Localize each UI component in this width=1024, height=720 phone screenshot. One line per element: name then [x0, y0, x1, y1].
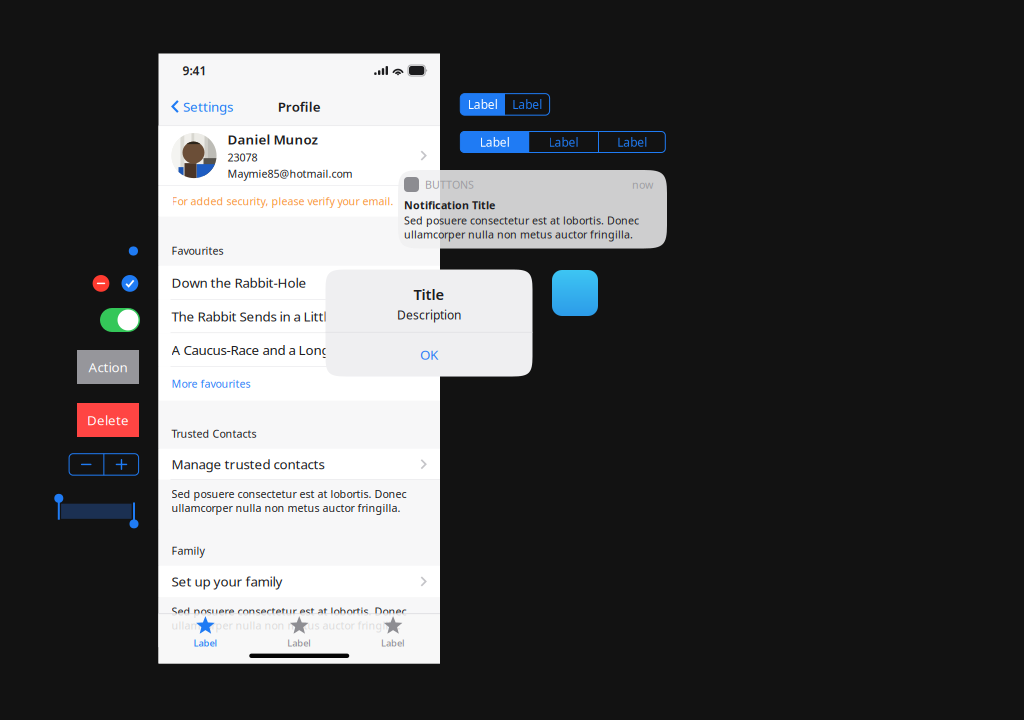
- staticText: Label: [512, 96, 542, 112]
- button[interactable]: Toggle on: [100, 308, 140, 332]
- staticText: Label: [287, 637, 311, 649]
- button[interactable]: Label: [460, 94, 505, 115]
- staticText: 23078: [227, 150, 257, 164]
- staticText: Label: [480, 134, 510, 150]
- staticText: Family: [171, 543, 204, 558]
- button[interactable]: Label: [599, 131, 665, 152]
- staticText: Description: [397, 307, 461, 323]
- button[interactable]: Label: [346, 614, 440, 650]
- staticText: Profile: [278, 98, 321, 115]
- staticText: Sed posuere consectetur est at lobortis.…: [171, 487, 406, 515]
- staticText: BUTTONS: [425, 177, 474, 192]
- button[interactable]: Label: [505, 94, 550, 115]
- staticText: Label: [549, 134, 579, 150]
- staticText: Down the Rabbit-Hole: [171, 274, 306, 291]
- button[interactable]: The Rabbit Sends in a Little Bill: [158, 300, 440, 333]
- button[interactable]: Remove: [93, 275, 109, 292]
- staticText: Trusted Contacts: [171, 426, 256, 441]
- button[interactable]: Label: [460, 131, 529, 152]
- button[interactable]: Confirm: [121, 275, 138, 292]
- button[interactable]: Daniel Munoz: [158, 126, 440, 185]
- staticText: The Rabbit Sends in a Little Bill: [171, 308, 355, 325]
- staticText: Maymie85@hotmail.com: [227, 166, 352, 181]
- button[interactable]: Manage trusted contacts: [158, 449, 440, 480]
- staticText: Label: [468, 96, 498, 112]
- staticText: 9:41: [182, 62, 206, 78]
- staticText: Set up your family: [171, 573, 282, 590]
- staticText: Manage trusted contacts: [171, 455, 324, 473]
- button[interactable]: Decrement: [69, 454, 103, 475]
- button[interactable]: Settings: [158, 87, 243, 125]
- staticText: Label: [617, 134, 647, 150]
- button[interactable]: Label: [529, 131, 598, 152]
- staticText: For added security, please verify your e…: [171, 194, 393, 208]
- staticText: Notification Title: [404, 198, 495, 212]
- button[interactable]: Action: [77, 350, 139, 384]
- staticText: OK: [420, 346, 438, 363]
- staticText: Daniel Munoz: [227, 131, 317, 148]
- button[interactable]: Delete: [77, 403, 139, 437]
- staticText: Favourites: [171, 243, 223, 258]
- staticText: Sed posuere consectetur est at lobortis.…: [404, 213, 639, 241]
- staticText: Action: [88, 358, 127, 376]
- button[interactable]: Set up your family: [158, 566, 440, 597]
- staticText: Label: [381, 637, 405, 649]
- button[interactable]: Label: [158, 614, 252, 650]
- staticText: now: [632, 177, 653, 192]
- button[interactable]: Label: [252, 614, 346, 650]
- button[interactable]: OK: [325, 332, 532, 376]
- button[interactable]: Increment: [104, 454, 138, 475]
- staticText: More favourites: [171, 377, 250, 391]
- staticText: Label: [193, 637, 217, 649]
- staticText: Sed posuere consectetur est at lobortis.…: [171, 604, 406, 632]
- button[interactable]: A Caucus-Race and a Long Tale: [158, 333, 440, 367]
- button[interactable]: Down the Rabbit-Hole: [158, 266, 440, 300]
- staticText: Title: [413, 284, 444, 304]
- staticText: Settings: [183, 98, 233, 115]
- staticText: A Caucus-Race and a Long Tale: [171, 341, 356, 359]
- staticText: Delete: [87, 411, 129, 429]
- button[interactable]: More favourites: [158, 367, 440, 401]
